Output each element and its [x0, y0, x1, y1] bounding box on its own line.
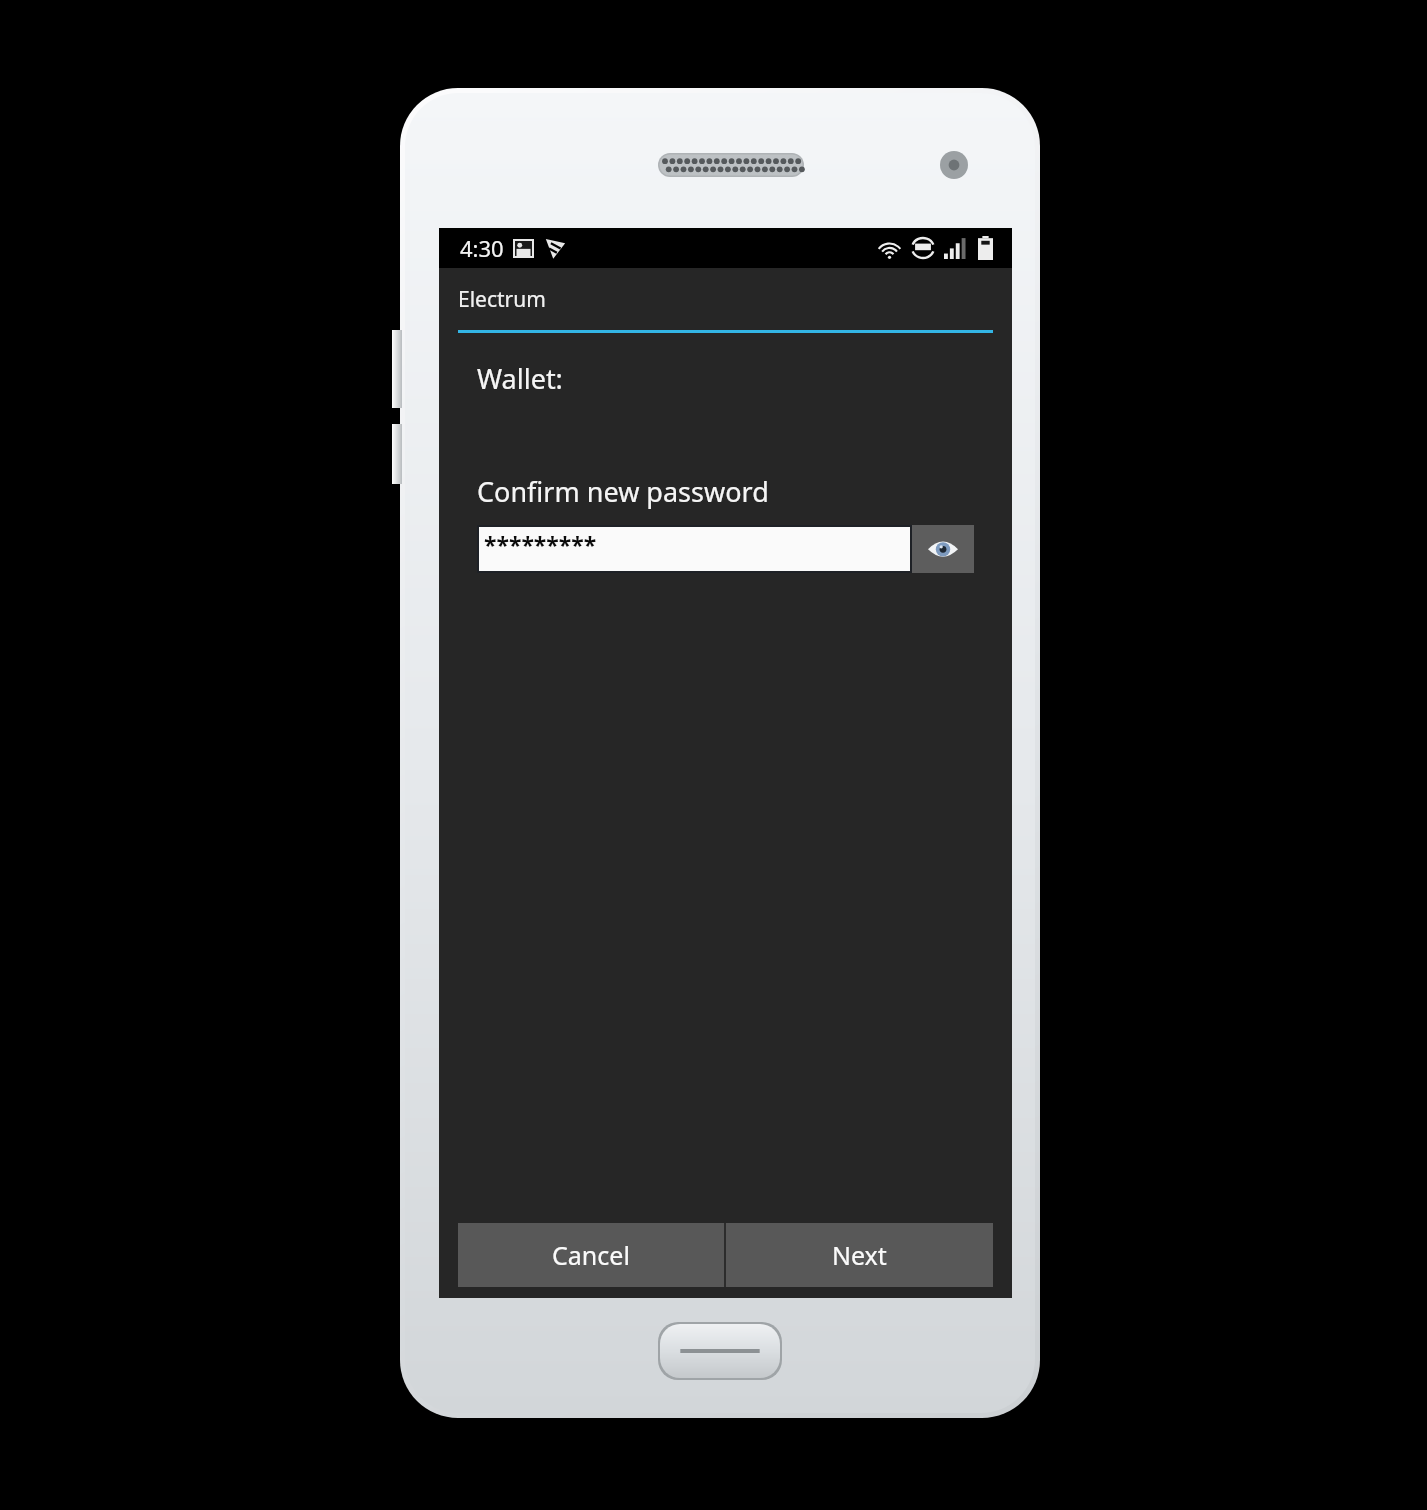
- staticText: Next: [832, 1238, 887, 1272]
- button[interactable]: Next: [726, 1223, 993, 1287]
- button[interactable]: Cancel: [458, 1223, 724, 1287]
- staticText: 4:30: [460, 233, 504, 263]
- staticText: Electrum: [458, 285, 546, 314]
- staticText: *********: [484, 529, 597, 560]
- staticText: Cancel: [552, 1238, 630, 1272]
- button[interactable]: *********: [479, 527, 910, 571]
- staticText: Confirm new password: [477, 473, 769, 510]
- staticText: Wallet:: [477, 360, 563, 397]
- button[interactable]: Show password: [912, 525, 974, 573]
